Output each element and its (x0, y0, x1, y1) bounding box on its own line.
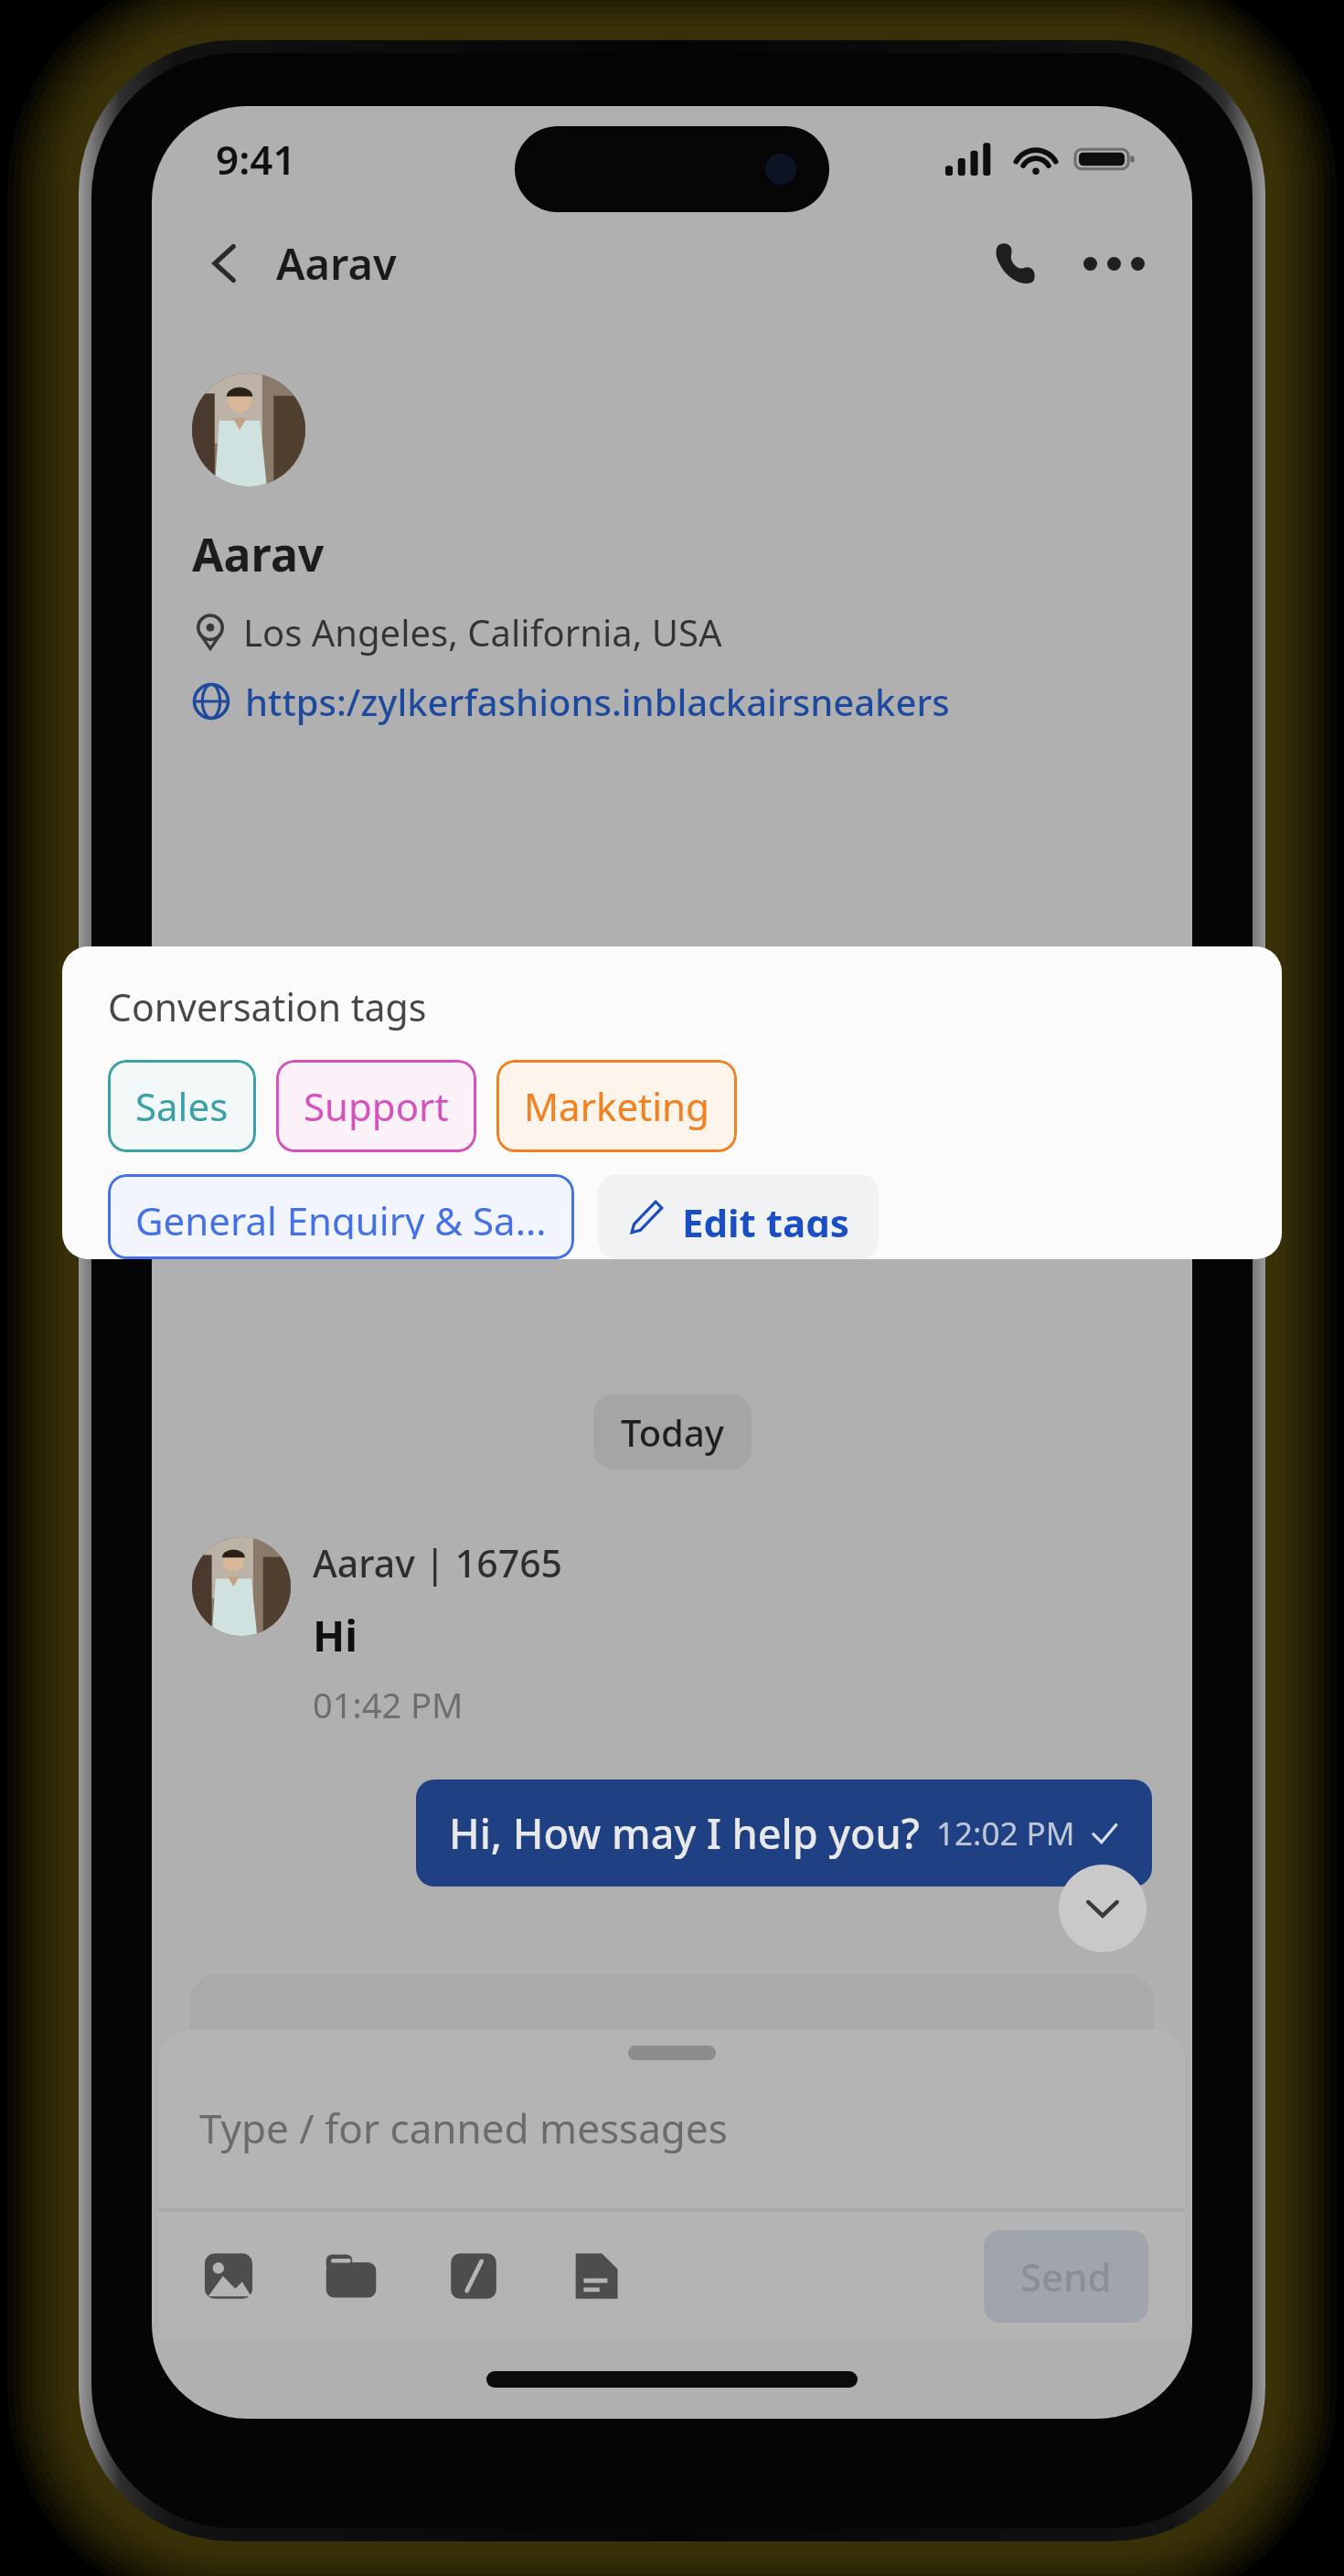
button[interactable]: General Enquiry & Sa... (108, 1174, 574, 1259)
staticText: Los Angeles, California, USA (243, 607, 722, 657)
button[interactable]: Support (276, 1060, 476, 1152)
button[interactable]: Scroll to bottom (1059, 1865, 1147, 1952)
staticText: Send (1020, 2250, 1112, 2303)
staticText: Support (304, 1080, 449, 1132)
staticText: Today (621, 1407, 724, 1457)
staticText: Aarav | 16765 (313, 1537, 563, 1588)
button[interactable]: https:/zylkerfashions.inblackairsneakers (192, 677, 950, 726)
staticText: Conversation tags (108, 981, 427, 1032)
button[interactable]: Profile photo (192, 1537, 291, 1636)
staticText: Sales (135, 1080, 229, 1132)
button[interactable]: Marketing (496, 1060, 737, 1152)
staticText: 12:02 PM (936, 1812, 1075, 1855)
button[interactable]: Canned messages (441, 2243, 507, 2309)
button[interactable]: Hi, How may I help you? (416, 1780, 1152, 1887)
button[interactable]: Sales (108, 1060, 256, 1152)
staticText: 01:42 PM (313, 1681, 464, 1728)
staticText: Hi (313, 1607, 357, 1664)
button[interactable]: Attach document (563, 2243, 629, 2309)
button[interactable]: Type / for canned messages (199, 2100, 728, 2155)
staticText: Aarav (276, 234, 397, 293)
staticText: Aarav (192, 523, 325, 585)
button[interactable]: Attach file (318, 2243, 384, 2309)
staticText: General Enquiry & Sa... (135, 1194, 547, 1239)
button[interactable]: Attach image (196, 2243, 261, 2309)
button[interactable]: Back (192, 230, 258, 296)
staticText: 9:41 (216, 132, 296, 187)
button[interactable]: Send (984, 2230, 1148, 2323)
staticText: Edit tags (682, 1196, 849, 1237)
button[interactable]: Call (976, 225, 1053, 302)
staticText: https:/zylkerfashions.inblackairsneakers (245, 677, 950, 726)
staticText: Marketing (524, 1080, 709, 1132)
staticText: Hi, How may I help you? (449, 1805, 920, 1861)
button[interactable]: More options (1075, 225, 1152, 302)
button[interactable]: Edit tags (598, 1174, 879, 1259)
button[interactable]: Profile photo (192, 373, 305, 486)
